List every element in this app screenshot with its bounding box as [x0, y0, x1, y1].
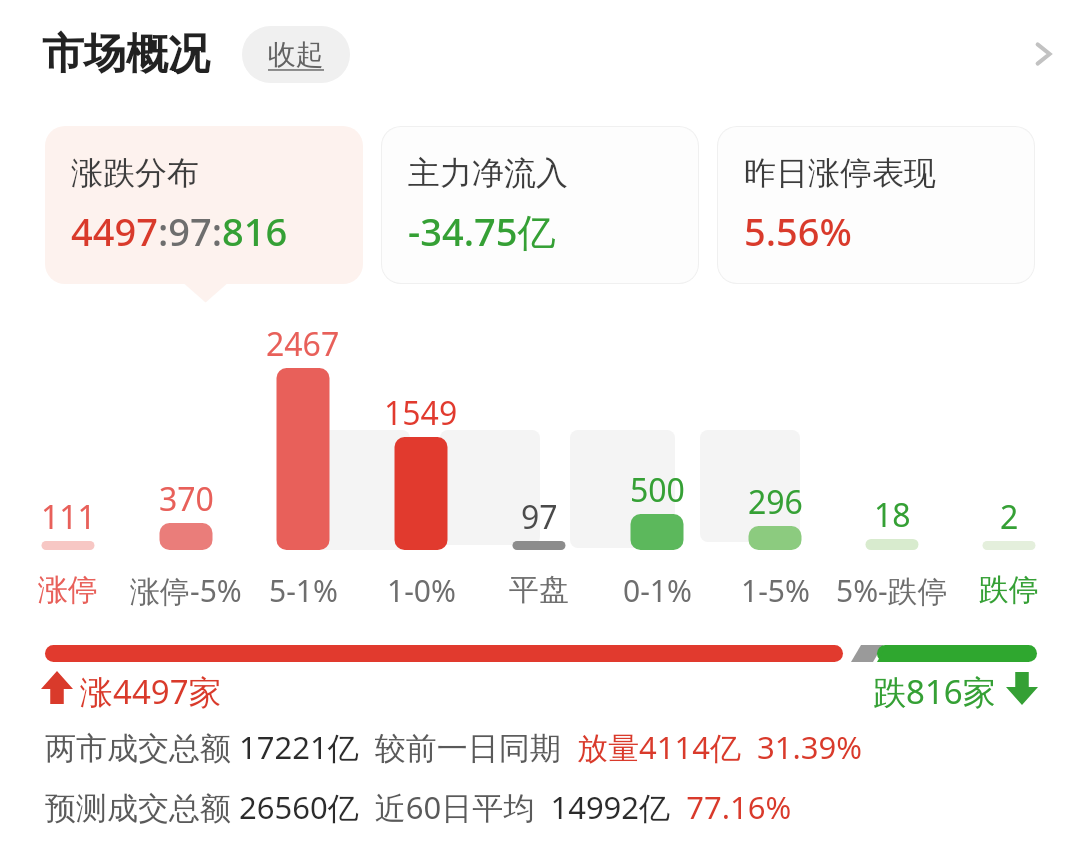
- staticText: 平盘: [509, 571, 569, 609]
- staticText: 1549: [384, 391, 458, 433]
- staticText: 500: [630, 468, 685, 510]
- staticText: 111: [41, 495, 96, 537]
- button[interactable]: 昨日涨停表现: [718, 127, 1034, 283]
- staticText: 97: [521, 495, 558, 537]
- button[interactable]: 主力净流入: [382, 127, 698, 283]
- staticText: 370: [159, 477, 214, 519]
- staticText: 跌816家: [873, 669, 996, 714]
- staticText: 跌停: [979, 571, 1039, 609]
- staticText: 5-1%: [269, 570, 338, 611]
- staticText: 涨4497家: [80, 669, 222, 714]
- staticText: 预测成交总额 26560亿 近60日平均 14992亿 77.16%: [45, 786, 792, 828]
- staticText: 涨停: [38, 571, 98, 609]
- button[interactable]: More: [1008, 18, 1080, 90]
- staticText: 296: [748, 480, 803, 522]
- button[interactable]: 涨跌分布: [45, 126, 363, 284]
- staticText: 两市成交总额 17221亿 较前一日同期 放量4114亿 31.39%: [45, 726, 863, 768]
- staticText: 5.56%: [744, 205, 852, 257]
- staticText: 0-1%: [623, 570, 692, 611]
- button[interactable]: 收起: [242, 26, 350, 83]
- staticText: 1-5%: [741, 570, 810, 611]
- staticText: 2467: [266, 322, 340, 364]
- staticText: 收起: [268, 37, 324, 72]
- staticText: 昨日涨停表现: [744, 153, 936, 193]
- staticText: 18: [874, 493, 911, 535]
- staticText: 5%-跌停: [836, 570, 948, 611]
- staticText: 涨停-5%: [130, 570, 242, 611]
- staticText: 2: [1000, 495, 1019, 537]
- staticText: 4497:97:816: [71, 205, 288, 257]
- staticText: 1-0%: [387, 570, 456, 611]
- staticText: 主力净流入: [408, 153, 568, 193]
- staticText: 涨跌分布: [71, 153, 199, 193]
- staticText: 市场概况: [42, 28, 210, 81]
- staticText: -34.75亿: [408, 205, 556, 257]
